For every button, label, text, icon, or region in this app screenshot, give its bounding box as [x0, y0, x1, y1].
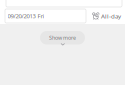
button[interactable]: 09/20/2013 Fri [5, 9, 86, 23]
button[interactable]: All-day [92, 12, 121, 20]
staticText: 09/20/2013 Fri [8, 12, 45, 20]
button[interactable]: Show more [40, 31, 85, 44]
staticText: All-day [101, 12, 121, 20]
staticText: Show more [49, 34, 76, 41]
